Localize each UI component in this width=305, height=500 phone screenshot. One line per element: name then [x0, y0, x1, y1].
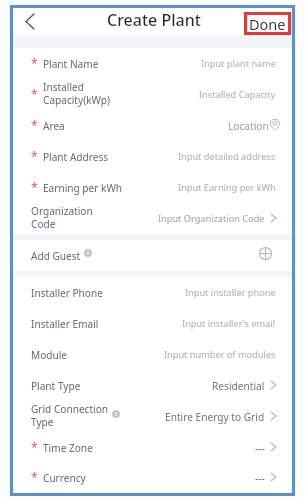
- staticText: *: [31, 439, 38, 455]
- button[interactable]: Plant Type: [13, 370, 292, 401]
- staticText: Input installer phone: [185, 286, 276, 299]
- button[interactable]: Back: [16, 8, 44, 35]
- staticText: *: [31, 117, 38, 133]
- button[interactable]: *: [13, 79, 292, 110]
- staticText: *: [31, 179, 38, 195]
- staticText: Earning per kWh: [43, 181, 123, 195]
- staticText: Currency: [43, 471, 86, 485]
- button[interactable]: Grid Connection Type: [13, 401, 292, 432]
- staticText: Input plant name: [201, 57, 276, 70]
- staticText: ---: [255, 441, 265, 455]
- staticText: Create Plant: [107, 9, 201, 31]
- staticText: Installed Capacity(kWp): [43, 80, 111, 107]
- staticText: Add Guest: [31, 249, 81, 263]
- button[interactable]: Organization Code: [13, 203, 292, 234]
- staticText: Input installer's email: [182, 317, 276, 330]
- staticText: Location: [228, 119, 269, 133]
- staticText: Time Zone: [43, 441, 93, 455]
- button[interactable]: Installer Phone: [13, 277, 292, 308]
- button[interactable]: *: [13, 48, 292, 79]
- staticText: Plant Type: [31, 379, 81, 393]
- staticText: ---: [255, 471, 265, 485]
- button[interactable]: *: [13, 432, 292, 463]
- button[interactable]: *: [13, 110, 292, 141]
- staticText: Plant Name: [43, 57, 99, 71]
- button[interactable]: Module: [13, 339, 292, 370]
- staticText: Input Organization Code: [158, 212, 265, 225]
- button[interactable]: Installer Email: [13, 308, 292, 339]
- staticText: Module: [31, 348, 68, 362]
- staticText: *: [31, 55, 38, 71]
- staticText: Grid Connection Type: [31, 402, 109, 429]
- button[interactable]: *: [13, 463, 292, 493]
- staticText: Installed Capacity: [199, 88, 276, 101]
- button[interactable]: Done: [244, 12, 291, 35]
- staticText: Input detailed address: [178, 150, 276, 163]
- staticText: *: [31, 148, 38, 164]
- staticText: Area: [43, 119, 65, 133]
- staticText: *: [31, 469, 38, 485]
- staticText: Input Earning per kWh: [178, 181, 276, 194]
- staticText: *: [31, 86, 38, 102]
- button[interactable]: *: [13, 172, 292, 203]
- staticText: Plant Address: [43, 150, 109, 164]
- button[interactable]: Add Guest: [13, 240, 292, 271]
- staticText: Entire Energy to Grid: [165, 410, 265, 424]
- staticText: Installer Phone: [31, 286, 103, 300]
- staticText: Installer Email: [31, 317, 99, 331]
- staticText: Done: [249, 14, 286, 34]
- staticText: Input number of modules: [164, 348, 276, 361]
- staticText: Organization Code: [31, 204, 93, 231]
- staticText: Residential: [212, 379, 265, 393]
- button[interactable]: *: [13, 141, 292, 172]
